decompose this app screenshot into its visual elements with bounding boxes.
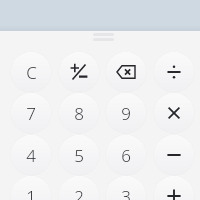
button[interactable]: 3 [105,175,147,200]
button[interactable]: 7 [10,92,52,134]
button[interactable]: C [10,51,52,93]
button[interactable]: 9 [105,92,147,134]
button[interactable]: 1 [10,175,52,200]
staticText: 6 [121,144,131,167]
button[interactable]: 6 [105,134,147,176]
staticText: C [26,61,37,84]
staticText: 7 [26,102,36,125]
button[interactable]: 8 [58,92,100,134]
button[interactable]: Divide [153,51,195,93]
button[interactable]: Toggle sign [58,51,100,93]
button[interactable]: Subtract [153,134,195,176]
button[interactable]: 4 [10,134,52,176]
staticText: 1 [26,185,36,200]
button[interactable]: Add [153,175,195,200]
button[interactable]: Expand display [93,33,114,41]
staticText: 4 [26,144,36,167]
staticText: 3 [121,185,131,200]
staticText: 2 [74,185,84,200]
button[interactable]: Multiply [153,92,195,134]
staticText: 9 [121,102,131,125]
button[interactable]: Backspace [105,51,147,93]
button[interactable]: 5 [58,134,100,176]
staticText: 5 [74,144,84,167]
staticText: 8 [74,102,84,125]
button[interactable]: 2 [58,175,100,200]
